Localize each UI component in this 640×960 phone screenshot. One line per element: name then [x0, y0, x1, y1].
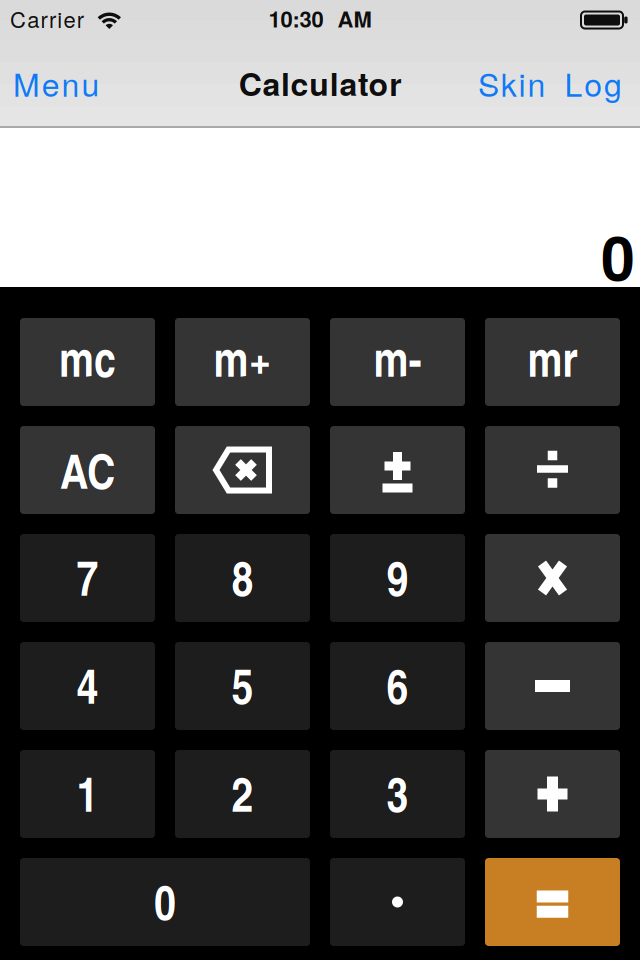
staticText: Calculator	[239, 60, 401, 106]
staticText: mc	[59, 324, 116, 391]
staticText: 8	[231, 543, 253, 610]
staticText: AC	[60, 436, 115, 503]
staticText: Menu	[13, 60, 99, 106]
staticText: 3	[386, 759, 408, 826]
staticText: 7	[76, 543, 98, 610]
staticText: Log	[564, 60, 622, 106]
staticText: 1	[76, 759, 98, 826]
staticText: Skin	[478, 60, 545, 106]
staticText: 0	[601, 212, 635, 299]
staticText: m-	[373, 324, 421, 391]
staticText: 4	[76, 651, 98, 718]
staticText: Carrier	[10, 3, 84, 34]
staticText: AM	[337, 3, 371, 34]
staticText: m+	[213, 324, 271, 391]
staticText: mr	[527, 324, 577, 391]
staticText: 2	[231, 759, 253, 826]
staticText: 10:30	[268, 3, 323, 34]
staticText: 0	[154, 867, 176, 934]
staticText: 6	[386, 651, 408, 718]
staticText: 5	[231, 651, 253, 718]
staticText: 9	[386, 543, 408, 610]
